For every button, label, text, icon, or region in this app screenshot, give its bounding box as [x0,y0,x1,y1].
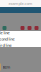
staticText: Item [2,64,10,70]
staticText: Title line [0,30,9,35]
staticText: example.com [8,1,32,6]
staticText: Second line [0,36,14,42]
staticText: Third line [0,43,11,48]
